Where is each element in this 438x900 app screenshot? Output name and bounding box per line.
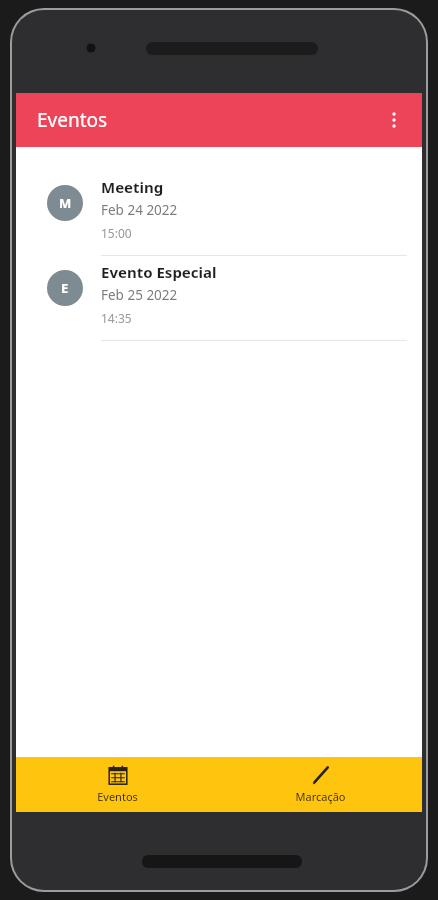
button[interactable]: E [16,256,422,341]
staticText: Feb 24 2022 [101,201,178,219]
staticText: Feb 25 2022 [101,286,178,304]
button[interactable]: Marcação [271,759,370,810]
staticText: Evento Especial [101,262,217,282]
staticText: E [61,279,69,297]
staticText: Marcação [295,789,346,804]
staticText: Meeting [101,177,164,197]
button[interactable]: M [16,171,422,256]
staticText: Eventos [37,107,108,133]
button[interactable]: Eventos [73,759,162,810]
staticText: M [59,194,72,212]
staticText: Eventos [97,789,138,804]
staticText: 14:35 [101,310,132,326]
button[interactable]: More options [374,100,414,140]
staticText: 15:00 [101,225,132,241]
